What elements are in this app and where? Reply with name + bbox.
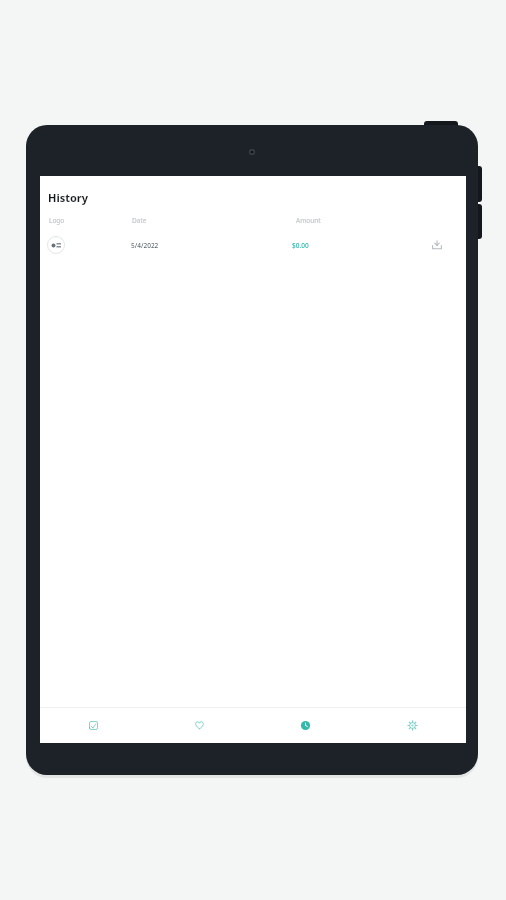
staticText: History [48, 190, 89, 205]
button[interactable] [40, 708, 146, 743]
staticText: 5/4/2022 [131, 241, 159, 250]
button[interactable] [252, 708, 359, 743]
staticText: $0.00 [292, 241, 309, 250]
staticText: Amount [296, 216, 321, 225]
button[interactable] [146, 708, 252, 743]
button[interactable] [430, 238, 444, 252]
button[interactable]: 5/4/2022 [40, 234, 466, 256]
staticText: Date [132, 216, 147, 225]
button[interactable] [359, 708, 466, 743]
staticText: Logo [49, 216, 65, 225]
